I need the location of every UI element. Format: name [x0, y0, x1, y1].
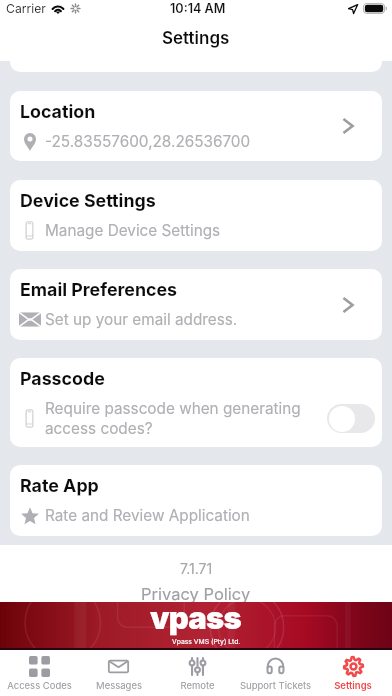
button[interactable]: Device Settings — [10, 180, 382, 251]
button[interactable]: Email Preferences — [10, 269, 382, 340]
staticText: -25.83557600,28.26536700 — [45, 132, 251, 151]
button[interactable]: Support Tickets — [236, 650, 314, 691]
button[interactable]: Require passcode toggle — [327, 404, 375, 433]
staticText: Remote — [180, 680, 215, 691]
staticText: Settings — [162, 28, 230, 49]
other: Wi-Fi — [51, 3, 65, 14]
staticText: Carrier — [6, 1, 46, 16]
staticText: 7.1.71 — [180, 560, 213, 577]
staticText: Vpass VMS (Pty) Ltd. — [172, 637, 241, 645]
staticText: Privacy Policy — [141, 584, 251, 602]
other: Support Tickets — [265, 656, 286, 677]
button[interactable]: Remote — [158, 650, 236, 691]
staticText: Rate App — [20, 475, 99, 497]
other: Settings — [343, 656, 364, 677]
button[interactable]: Privacy Policy — [141, 584, 251, 602]
staticText: Passcode — [20, 368, 105, 390]
button[interactable]: Location — [10, 91, 382, 161]
other: Battery full — [363, 3, 387, 14]
staticText: Rate and Review Application — [45, 506, 250, 525]
staticText: Messages — [96, 680, 142, 691]
other: Location services — [348, 4, 358, 14]
staticText: Email Preferences — [20, 279, 178, 301]
staticText: Support Tickets — [240, 680, 311, 691]
staticText: 10:14 AM — [170, 1, 226, 16]
button[interactable]: Messages — [79, 650, 158, 691]
button[interactable]: Passcode — [10, 358, 382, 447]
staticText: Device Settings — [20, 190, 156, 212]
button[interactable]: Settings — [314, 650, 392, 691]
staticText: Require passcode when generating access … — [45, 399, 301, 437]
button[interactable]: Rate App — [10, 465, 382, 536]
staticText: Manage Device Settings — [45, 221, 221, 240]
other: Messages — [108, 656, 129, 677]
other: Syncing — [71, 4, 80, 13]
staticText: vpass — [150, 599, 241, 637]
staticText: Set up your email address. — [45, 310, 238, 329]
staticText: Access Codes — [7, 680, 72, 691]
other: Open — [342, 118, 354, 134]
other: Access Codes — [29, 656, 50, 677]
button[interactable]: vpass advertisement — [0, 602, 392, 648]
staticText: Settings — [334, 680, 372, 691]
button[interactable]: Access Codes — [0, 650, 79, 691]
other: Open — [342, 297, 354, 313]
staticText: Location — [20, 101, 96, 123]
other: Remote — [187, 656, 208, 677]
